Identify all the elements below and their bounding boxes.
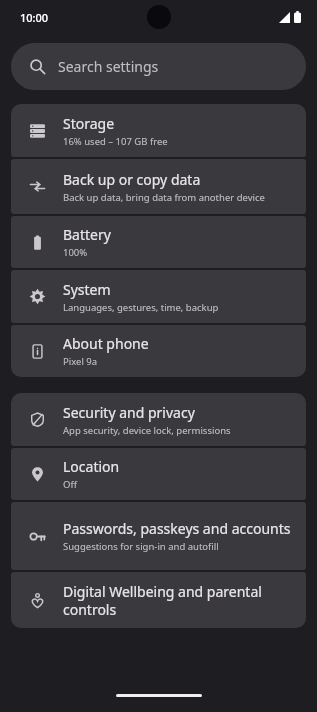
staticText: Storage <box>63 114 115 133</box>
button[interactable]: Search settings <box>11 43 306 90</box>
staticText: Digital Wellbeing and parental controls <box>63 582 294 619</box>
staticText: Suggestions for sign-in and autofill <box>63 540 219 553</box>
staticText: Languages, gestures, time, backup <box>63 301 219 314</box>
button[interactable]: Passwords, passkeys and accounts <box>11 502 306 570</box>
button[interactable]: System <box>11 270 306 323</box>
staticText: Back up or copy data <box>63 170 201 189</box>
staticText: About phone <box>63 334 149 353</box>
staticText: Search settings <box>58 57 159 76</box>
button[interactable]: About phone <box>11 325 306 377</box>
button[interactable]: Digital Wellbeing and parental controls <box>11 572 306 628</box>
staticText: Security and privacy <box>63 403 195 422</box>
button[interactable]: Location <box>11 448 306 500</box>
staticText: System <box>63 280 111 299</box>
button[interactable]: Security and privacy <box>11 393 306 446</box>
staticText: Passwords, passkeys and accounts <box>63 519 291 538</box>
staticText: Back up data, bring data from another de… <box>63 191 265 204</box>
staticText: Off <box>63 478 77 491</box>
staticText: Location <box>63 457 120 476</box>
button[interactable]: Storage <box>11 104 306 157</box>
staticText: Battery <box>63 225 111 244</box>
staticText: 10:00 <box>20 10 49 25</box>
button[interactable]: Back up or copy data <box>11 159 306 214</box>
button[interactable]: Battery <box>11 216 306 268</box>
staticText: 16% used – 107 GB free <box>63 135 168 148</box>
staticText: 100% <box>63 246 88 259</box>
staticText: Pixel 9a <box>63 355 98 368</box>
staticText: App security, device lock, permissions <box>63 424 231 437</box>
